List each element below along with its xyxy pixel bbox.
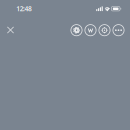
- staticText: 12:48: [16, 4, 32, 13]
- button[interactable]: Recenter: [99, 25, 110, 36]
- button[interactable]: Close: [4, 23, 17, 37]
- button[interactable]: Settings: [71, 25, 82, 36]
- button[interactable]: Crown: [85, 25, 96, 36]
- button[interactable]: More options: [113, 25, 124, 36]
